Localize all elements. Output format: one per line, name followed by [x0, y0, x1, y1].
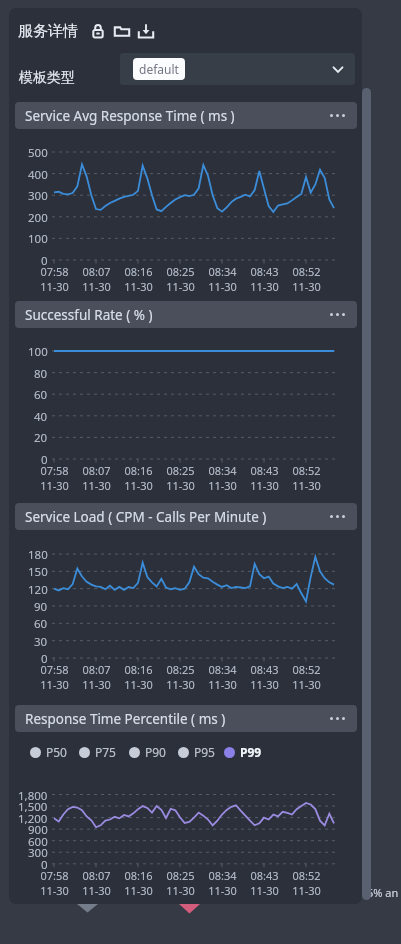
staticText: 11-30 [82, 279, 111, 294]
staticText: 08:07 [82, 463, 111, 478]
staticText: 07:58 [40, 662, 69, 677]
staticText: 0 [41, 857, 48, 873]
staticText: 11-30 [124, 478, 153, 493]
staticText: 08:43 [250, 662, 279, 677]
staticText: 08:16 [124, 662, 153, 677]
staticText: 08:16 [124, 264, 153, 279]
staticText: 11-30 [292, 478, 321, 493]
staticText: P99 [240, 744, 262, 760]
staticText: 11-30 [166, 883, 195, 898]
staticText: 08:52 [292, 868, 321, 883]
staticText: 180 [28, 547, 48, 563]
button[interactable]: P75 [79, 739, 116, 765]
staticText: 600 [28, 834, 48, 850]
staticText: 11-30 [292, 883, 321, 898]
staticText: 11-30 [292, 279, 321, 294]
staticText: 0 [41, 452, 48, 468]
staticText: 08:25 [166, 264, 195, 279]
staticText: 11-30 [250, 677, 279, 692]
staticText: 60 [34, 616, 48, 632]
other: More options [330, 114, 345, 117]
button[interactable]: default [120, 53, 355, 85]
staticText: 11-30 [250, 883, 279, 898]
staticText: 07:58 [40, 264, 69, 279]
staticText: 08:43 [250, 868, 279, 883]
staticText: 11-30 [124, 677, 153, 692]
staticText: 08:34 [208, 662, 237, 677]
staticText: 1,800 [18, 788, 48, 804]
staticText: 08:34 [208, 868, 237, 883]
staticText: 300 [28, 188, 48, 204]
button[interactable]: Response Time Percentile ( ms ) [15, 705, 357, 732]
staticText: 08:25 [166, 868, 195, 883]
staticText: Successful Rate ( % ) [25, 306, 153, 324]
staticText: 300 [28, 845, 48, 861]
button[interactable]: P90 [129, 739, 166, 765]
staticText: 08:34 [208, 264, 237, 279]
button[interactable]: P99 [224, 739, 262, 765]
staticText: Response Time Percentile ( ms ) [25, 710, 226, 728]
staticText: 30 [34, 634, 48, 650]
staticText: 11-30 [208, 279, 237, 294]
staticText: 40 [34, 409, 48, 425]
staticText: 11-30 [124, 279, 153, 294]
button[interactable]: Successful Rate ( % ) [15, 301, 357, 328]
staticText: 08:52 [292, 264, 321, 279]
staticText: P50 [46, 744, 67, 760]
staticText: 08:52 [292, 662, 321, 677]
staticText: 08:07 [82, 868, 111, 883]
staticText: 08:16 [124, 463, 153, 478]
staticText: 08:34 [208, 463, 237, 478]
button[interactable]: Folder [112, 21, 132, 41]
staticText: 08:25 [166, 662, 195, 677]
staticText: 80 [34, 366, 48, 382]
staticText: P90 [145, 744, 166, 760]
staticText: 11-30 [82, 478, 111, 493]
button[interactable]: Lock [88, 21, 108, 41]
staticText: 11-30 [208, 677, 237, 692]
staticText: 100 [28, 231, 48, 247]
staticText: 0 [41, 651, 48, 667]
other: More options [330, 515, 345, 518]
staticText: 08:07 [82, 264, 111, 279]
staticText: 11-30 [166, 478, 195, 493]
staticText: 120 [28, 582, 48, 598]
staticText: 0 [41, 253, 48, 269]
other: More options [330, 717, 345, 720]
staticText: 11-30 [250, 478, 279, 493]
staticText: 07:58 [40, 463, 69, 478]
staticText: 200 [28, 210, 48, 226]
staticText: P95 [194, 744, 215, 760]
staticText: 07:58 [40, 868, 69, 883]
staticText: 100 [28, 344, 48, 360]
staticText: 11-30 [40, 883, 69, 898]
staticText: 5% an [367, 885, 399, 900]
staticText: 150 [28, 564, 48, 580]
staticText: 900 [28, 822, 48, 838]
button[interactable]: Service Load ( CPM - Calls Per Minute ) [15, 503, 357, 530]
staticText: 90 [34, 599, 48, 615]
staticText: 11-30 [124, 883, 153, 898]
staticText: 11-30 [166, 677, 195, 692]
staticText: 08:43 [250, 264, 279, 279]
button[interactable]: P50 [30, 739, 67, 765]
staticText: 20 [34, 430, 48, 446]
staticText: 60 [34, 387, 48, 403]
button[interactable]: Download [136, 21, 156, 41]
staticText: default [139, 61, 179, 77]
staticText: Service Load ( CPM - Calls Per Minute ) [25, 508, 267, 526]
button[interactable]: P95 [178, 739, 215, 765]
staticText: 11-30 [250, 279, 279, 294]
staticText: 11-30 [82, 677, 111, 692]
staticText: 500 [28, 145, 48, 161]
staticText: 1,200 [18, 811, 48, 827]
staticText: 08:25 [166, 463, 195, 478]
staticText: 11-30 [82, 883, 111, 898]
staticText: 11-30 [40, 677, 69, 692]
staticText: 11-30 [40, 478, 69, 493]
staticText: 11-30 [292, 677, 321, 692]
staticText: P75 [95, 744, 116, 760]
button[interactable]: Service Avg Response Time ( ms ) [15, 102, 357, 129]
staticText: 11-30 [208, 883, 237, 898]
staticText: 1,500 [18, 799, 48, 815]
